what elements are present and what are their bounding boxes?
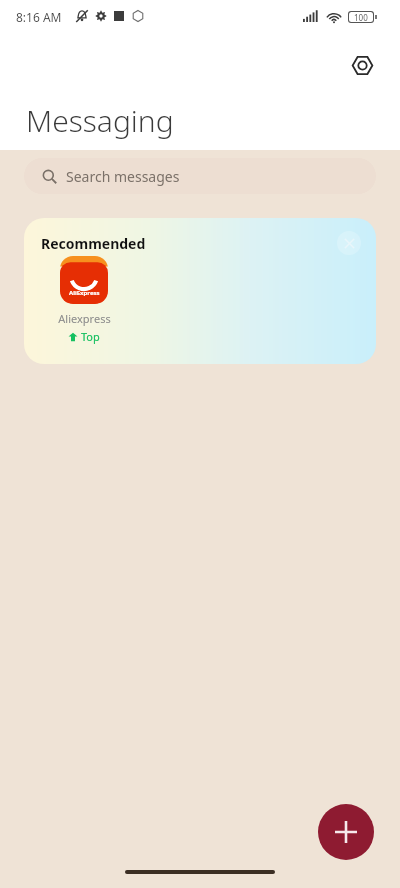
staticText: Top — [81, 329, 100, 344]
button[interactable]: Search messages — [24, 158, 376, 194]
staticText: 8:16 AM — [16, 9, 62, 25]
staticText: Aliexpress — [58, 311, 111, 326]
staticText: Messaging — [26, 100, 174, 141]
staticText: Recommended — [41, 234, 146, 253]
staticText: 100 — [354, 12, 368, 22]
staticText: Search messages — [66, 167, 180, 186]
button[interactable]: Settings — [344, 47, 380, 83]
button[interactable]: Dismiss — [337, 231, 361, 255]
button[interactable]: Recommended — [24, 218, 376, 364]
button[interactable]: AliExpress — [46, 256, 122, 344]
button[interactable]: New message — [318, 804, 374, 860]
staticText: AliExpress — [69, 289, 100, 297]
